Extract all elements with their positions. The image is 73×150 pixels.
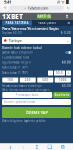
- staticText: Cüzdanda kalan tutar: [2, 56, 29, 59]
- button[interactable]: 1000: [55, 77, 71, 82]
- staticText: 100: [7, 78, 13, 82]
- staticText: Gönder yüklemek tutarı: [3, 100, 35, 104]
- staticText: Şartları kabul ediyorum: [2, 51, 32, 54]
- button[interactable]: ÖDEME YAP: [2, 107, 71, 118]
- button[interactable]: Forward: [20, 144, 26, 150]
- staticText: ‹: [9, 143, 11, 150]
- staticText: ↻: [66, 6, 69, 10]
- staticText: ›: [22, 143, 24, 150]
- staticText: PARA ÇEKME: [37, 21, 55, 25]
- button[interactable]: Close: [66, 20, 71, 25]
- staticText: KAYIT OL: [37, 15, 50, 18]
- button[interactable]: Reload: [66, 5, 70, 10]
- staticText: ⌄: [66, 38, 69, 43]
- staticText: 1xbet-tr.com: [27, 5, 48, 11]
- button[interactable]: Anahtarla: [53, 92, 71, 98]
- button[interactable]: KAYIT OL: [37, 14, 51, 18]
- staticText: 250: [25, 78, 31, 82]
- staticText: Türkiye: [9, 38, 22, 43]
- button[interactable]: Back: [7, 144, 13, 150]
- staticText: Anahtarla: [54, 93, 69, 97]
- button[interactable]: 250: [20, 77, 36, 82]
- staticText: +: [67, 71, 69, 75]
- button[interactable]: Toggle: [65, 51, 71, 54]
- staticText: PARA YATIRMA: [5, 21, 28, 25]
- staticText: ᗕ: [3, 6, 6, 10]
- button[interactable]: PARA YATIRMA: [2, 20, 32, 25]
- staticText: Promosyon kodu: [16, 93, 39, 97]
- staticText: Toplam: ₺0.00: [2, 31, 22, 35]
- staticText: ❏: [47, 144, 52, 150]
- staticText: ⌂: [24, 6, 26, 9]
- staticText: ÖDEME YAP: [25, 110, 47, 115]
- staticText: ıll ᯤ ▉: [57, 0, 69, 5]
- staticText: ⌄: [67, 100, 69, 103]
- button[interactable]: −: [48, 70, 53, 75]
- staticText: −: [49, 71, 51, 75]
- staticText: Bahis tutarı (1 TRY): [2, 66, 28, 69]
- staticText: ↥: [34, 144, 38, 150]
- staticText: 50.0: [56, 71, 63, 75]
- button[interactable]: PARA ÇEKME: [33, 20, 60, 25]
- staticText: ₺0.00: [62, 84, 71, 88]
- button[interactable]: 500: [37, 77, 53, 82]
- staticText: ₺0.00: [62, 61, 71, 64]
- button[interactable]: Bookmarks: [47, 144, 53, 150]
- staticText: 1000: [59, 78, 67, 82]
- button[interactable]: Tabs: [60, 144, 66, 150]
- staticText: Para Yatırma Yöntemini Seçin: [2, 26, 59, 31]
- staticText: ₺ 0.00: [61, 31, 71, 35]
- button[interactable]: 50.0: [54, 70, 65, 75]
- button[interactable]: +: [66, 70, 71, 75]
- staticText: Web sitemiz üzerinden işlem yapın: [2, 88, 50, 92]
- staticText: 9:41: [4, 0, 11, 5]
- button[interactable]: 1XBET: [2, 12, 23, 21]
- staticText: Sigorta miktarı değeri: [2, 61, 31, 64]
- staticText: ⧉: [61, 144, 65, 150]
- button[interactable]: Reader: [3, 5, 7, 10]
- button[interactable]: 100: [2, 77, 18, 82]
- staticText: 1XBET: [2, 12, 23, 21]
- button[interactable]: Account: [65, 14, 69, 18]
- staticText: ✕: [67, 21, 70, 25]
- staticText: 500: [42, 78, 48, 82]
- button[interactable]: Share: [33, 144, 39, 150]
- staticText: Bahis tutarı (1 TRY): [2, 71, 28, 75]
- staticText: Bizimle hızlı ödeme kabul: [2, 46, 42, 50]
- staticText: Bahis bilgisine kaydettir şekilde: [2, 119, 46, 123]
- staticText: Hesabınıza emanet etmek için: [2, 84, 42, 88]
